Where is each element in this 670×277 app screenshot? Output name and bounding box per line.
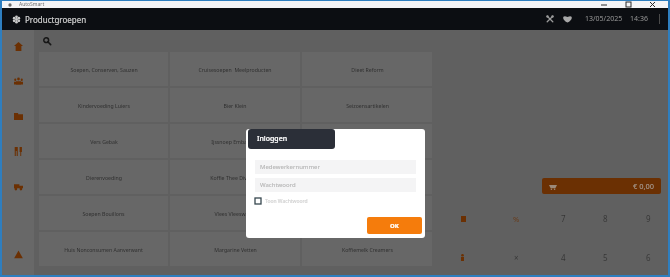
button[interactable]: Koffiemelk Creamers bbox=[302, 232, 432, 266]
button[interactable]: Medewerkernummer bbox=[255, 160, 416, 174]
button[interactable]: Home bbox=[2, 35, 34, 57]
staticText: Vers Gebak bbox=[90, 138, 118, 145]
staticText: € 0,00 bbox=[633, 181, 655, 191]
staticText: Wachtwoord bbox=[260, 181, 296, 189]
button[interactable]: Kindervoeding Luiers bbox=[39, 88, 168, 122]
button[interactable]: € 0,00 bbox=[542, 178, 661, 194]
button[interactable]: Close bbox=[640, 1, 664, 8]
button[interactable]: Customers bbox=[2, 70, 34, 92]
button[interactable]: Bier Klein bbox=[170, 88, 300, 122]
button[interactable]: Vlees Vleeswaren bbox=[170, 196, 300, 230]
button[interactable]: Cruisesoepen Meelproducten bbox=[170, 52, 300, 86]
button[interactable]: Warning bbox=[2, 243, 34, 265]
button[interactable]: Dierenvoeding bbox=[39, 160, 168, 194]
staticText: Toon Wachtwoord bbox=[265, 198, 308, 205]
staticText: Margarine Vetten bbox=[214, 246, 257, 253]
staticText: Inloggen bbox=[257, 134, 288, 144]
staticText: × bbox=[514, 252, 519, 263]
staticText: Koffie Thee Diversen bbox=[210, 174, 261, 181]
button[interactable]: Customer bbox=[438, 239, 488, 275]
staticText: Soepen Bouillons bbox=[82, 210, 125, 217]
button[interactable]: Folder bbox=[2, 105, 34, 127]
button[interactable]: Groente Fruit bbox=[302, 196, 432, 230]
staticText: 8 bbox=[603, 213, 608, 224]
button[interactable]: Koffie Thee Diversen bbox=[170, 160, 300, 194]
button[interactable]: Brood Banket bbox=[302, 160, 432, 194]
button[interactable]: Soepen, Conserven, Sauzen bbox=[39, 52, 168, 86]
button[interactable]: Huis Nonconsumen Aanverwant bbox=[39, 232, 168, 266]
button[interactable]: Seizoensartikelen bbox=[302, 88, 432, 122]
staticText: 13/05/2025 bbox=[585, 14, 623, 24]
button[interactable]: Minimize bbox=[592, 1, 616, 8]
button[interactable]: OK bbox=[367, 217, 422, 234]
staticText: Vlees Vleeswaren bbox=[214, 210, 257, 217]
staticText: Koffiemelk Creamers bbox=[342, 246, 393, 253]
staticText: Cruisesoepen Meelproducten bbox=[198, 66, 272, 73]
staticText: Bier Klein bbox=[223, 102, 247, 109]
button[interactable]: Maximize bbox=[616, 1, 640, 8]
staticText: Productgroepen bbox=[25, 14, 87, 25]
staticText: 7 bbox=[561, 213, 566, 224]
button[interactable]: Restaurant bbox=[2, 140, 34, 162]
button[interactable]: Search bbox=[40, 34, 54, 48]
staticText: Soepen, Conserven, Sauzen bbox=[70, 66, 138, 73]
staticText: Kindervoeding Luiers bbox=[78, 102, 130, 109]
button[interactable]: Dieet Reform bbox=[302, 52, 432, 86]
button[interactable]: Delete bbox=[438, 198, 488, 239]
staticText: Medewerkernummer bbox=[260, 163, 320, 171]
button[interactable]: Ijssnoep Emballage bbox=[170, 124, 300, 158]
button[interactable]: Delivery bbox=[2, 175, 34, 197]
button[interactable]: Toon Wachtwoord bbox=[255, 196, 308, 206]
staticText: Dieet Reform bbox=[351, 66, 384, 73]
button[interactable]: Inloggen bbox=[248, 129, 335, 149]
button[interactable]: Margarine Vetten bbox=[170, 232, 300, 266]
staticText: Brood Banket bbox=[350, 174, 384, 181]
staticText: Seizoensartikelen bbox=[346, 102, 389, 109]
staticText: 14:36 bbox=[630, 14, 648, 24]
button[interactable]: Menu bbox=[9, 12, 23, 26]
staticText: 9 bbox=[646, 213, 651, 224]
staticText: OK bbox=[390, 222, 399, 230]
button[interactable]: Tools bbox=[544, 11, 555, 27]
staticText: Huis Nonconsumen Aanverwant bbox=[64, 246, 143, 253]
button[interactable]: Vers Gebak bbox=[39, 124, 168, 158]
staticText: % bbox=[513, 214, 520, 224]
button[interactable]: Soepen Bouillons bbox=[39, 196, 168, 230]
button[interactable]: Koffie Thee Cacao bbox=[302, 124, 432, 158]
staticText: AutoSmart bbox=[19, 1, 45, 8]
staticText: 6 bbox=[646, 252, 651, 263]
button[interactable]: Wachtwoord bbox=[255, 178, 416, 192]
staticText: 5 bbox=[603, 252, 608, 263]
staticText: Ijssnoep Emballage bbox=[211, 138, 259, 145]
staticText: Dierenvoeding bbox=[86, 174, 122, 181]
button[interactable]: % bbox=[488, 198, 544, 239]
staticText: 4 bbox=[561, 252, 566, 263]
button[interactable]: Favorites bbox=[562, 11, 573, 27]
